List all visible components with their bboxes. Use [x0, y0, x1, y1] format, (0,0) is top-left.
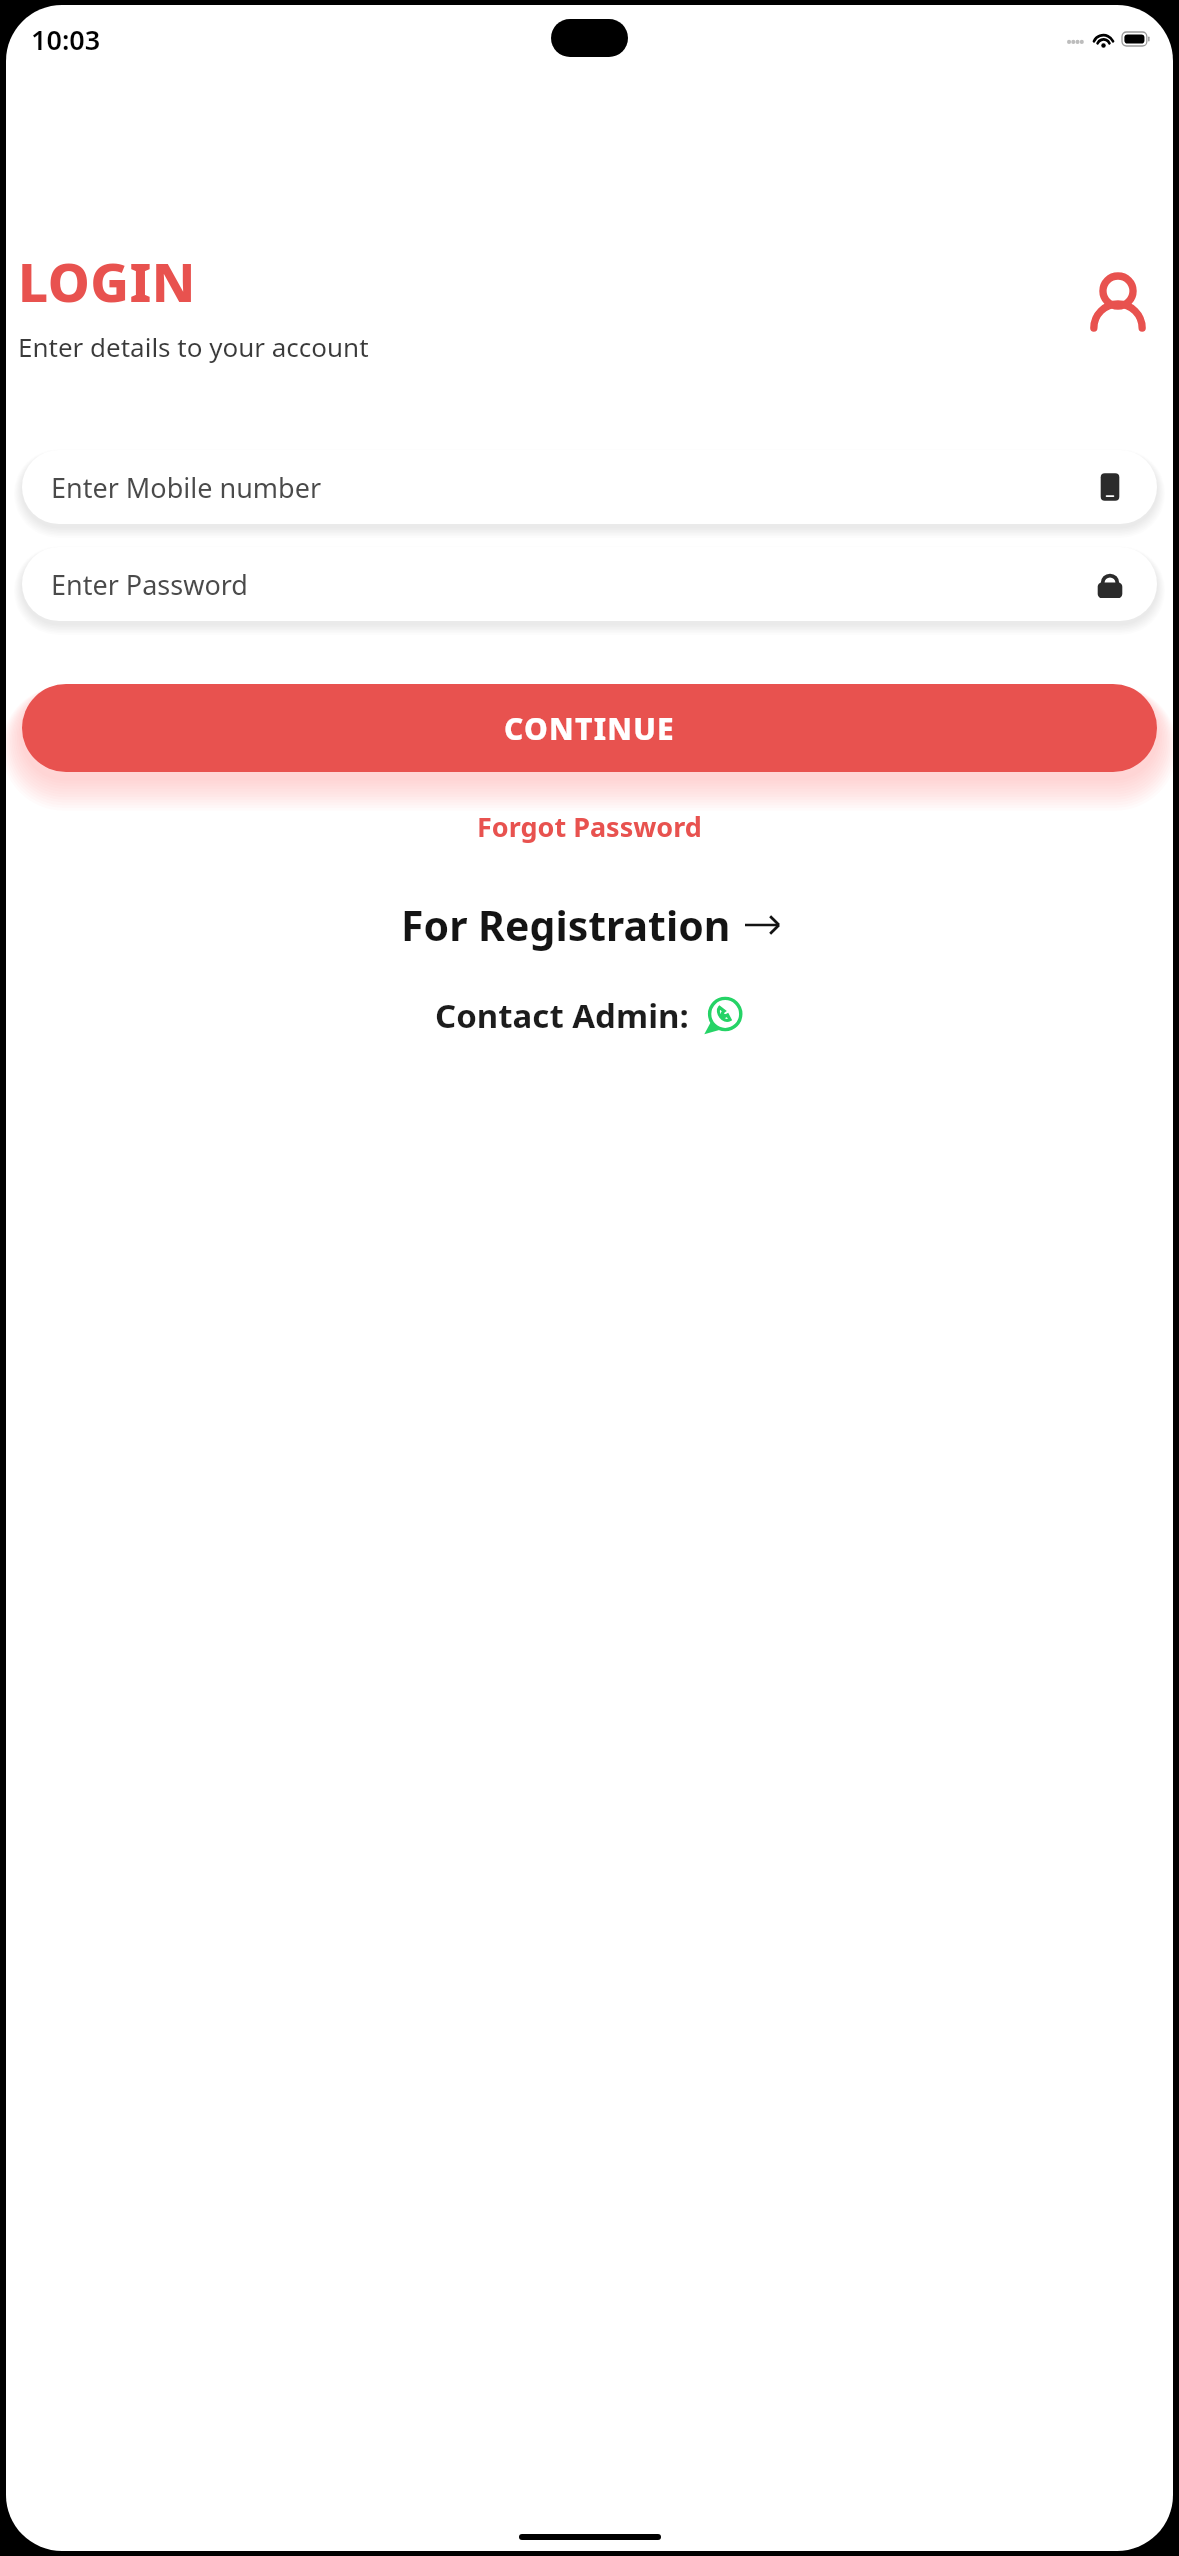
button[interactable]: Forgot Password [459, 800, 720, 853]
staticText: 10:03 [31, 21, 101, 58]
button[interactable]: Contact Admin: [419, 985, 761, 1046]
other: WhatsApp [703, 995, 745, 1037]
other: Password [1093, 567, 1127, 601]
staticText: Enter Password [51, 566, 1093, 603]
staticText: Forgot Password [477, 808, 702, 845]
staticText: Contact Admin: [435, 993, 689, 1038]
button[interactable]: CONTINUE [22, 684, 1157, 772]
staticText: Enter Mobile number [51, 469, 1093, 506]
staticText: Enter details to your account [18, 329, 369, 364]
button[interactable]: Account [1079, 266, 1157, 344]
staticText: For Registration [401, 897, 731, 953]
button[interactable]: Enter Password [22, 547, 1157, 621]
staticText: CONTINUE [504, 708, 675, 749]
button[interactable]: For Registration [385, 889, 795, 961]
other: Mobile number [1093, 470, 1127, 504]
staticText: LOGIN [18, 245, 196, 317]
button[interactable]: Enter Mobile number [22, 450, 1157, 524]
